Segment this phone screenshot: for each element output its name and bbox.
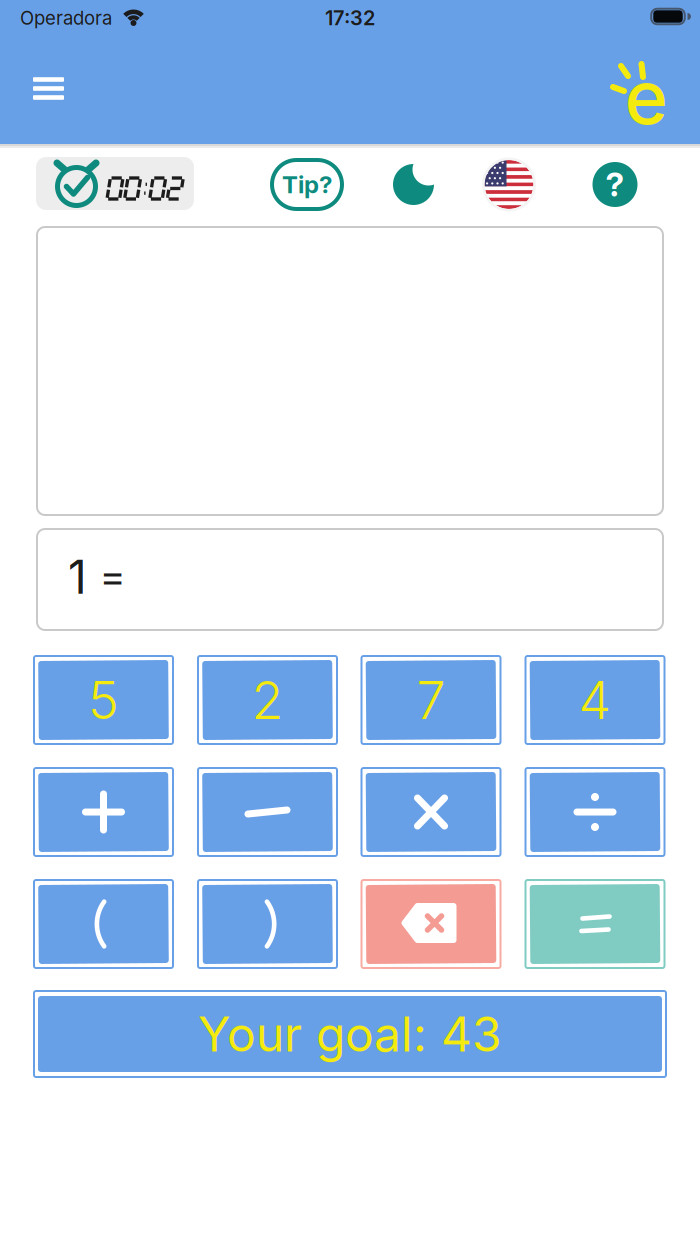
staticText: Your goal: 43 xyxy=(198,1005,502,1063)
button[interactable]: Dark mode xyxy=(389,160,437,208)
button[interactable]: Open parenthesis xyxy=(33,879,174,969)
staticText: 5 xyxy=(88,668,119,731)
button[interactable]: 5 xyxy=(33,655,174,745)
button[interactable]: 2 xyxy=(197,655,338,745)
button[interactable]: Help xyxy=(591,160,639,208)
staticText: Operadora xyxy=(20,7,112,29)
staticText: Tip? xyxy=(282,170,332,199)
staticText: ? xyxy=(605,164,624,204)
staticText: = xyxy=(100,552,125,600)
staticText: 1 xyxy=(68,549,87,605)
button[interactable]: Language xyxy=(482,157,536,211)
staticText: 4 xyxy=(578,668,611,731)
button[interactable]: 4 xyxy=(524,655,665,745)
button[interactable]: Minus xyxy=(197,767,338,857)
button[interactable]: Divide xyxy=(524,767,665,857)
button[interactable]: Backspace xyxy=(360,879,501,969)
button[interactable]: Plus xyxy=(33,767,174,857)
button[interactable]: Menu xyxy=(26,66,70,110)
button[interactable]: Equals xyxy=(524,879,665,969)
button[interactable]: Tip? xyxy=(270,158,344,211)
staticText: 7 xyxy=(416,668,445,731)
button[interactable]: Close parenthesis xyxy=(197,879,338,969)
button[interactable]: Timer 00:02 xyxy=(36,157,194,210)
button[interactable]: 7 xyxy=(360,655,501,745)
staticText: e xyxy=(624,52,667,142)
staticText: 17:32 xyxy=(325,6,375,30)
staticText: 2 xyxy=(251,668,283,731)
button[interactable]: Multiply xyxy=(360,767,501,857)
